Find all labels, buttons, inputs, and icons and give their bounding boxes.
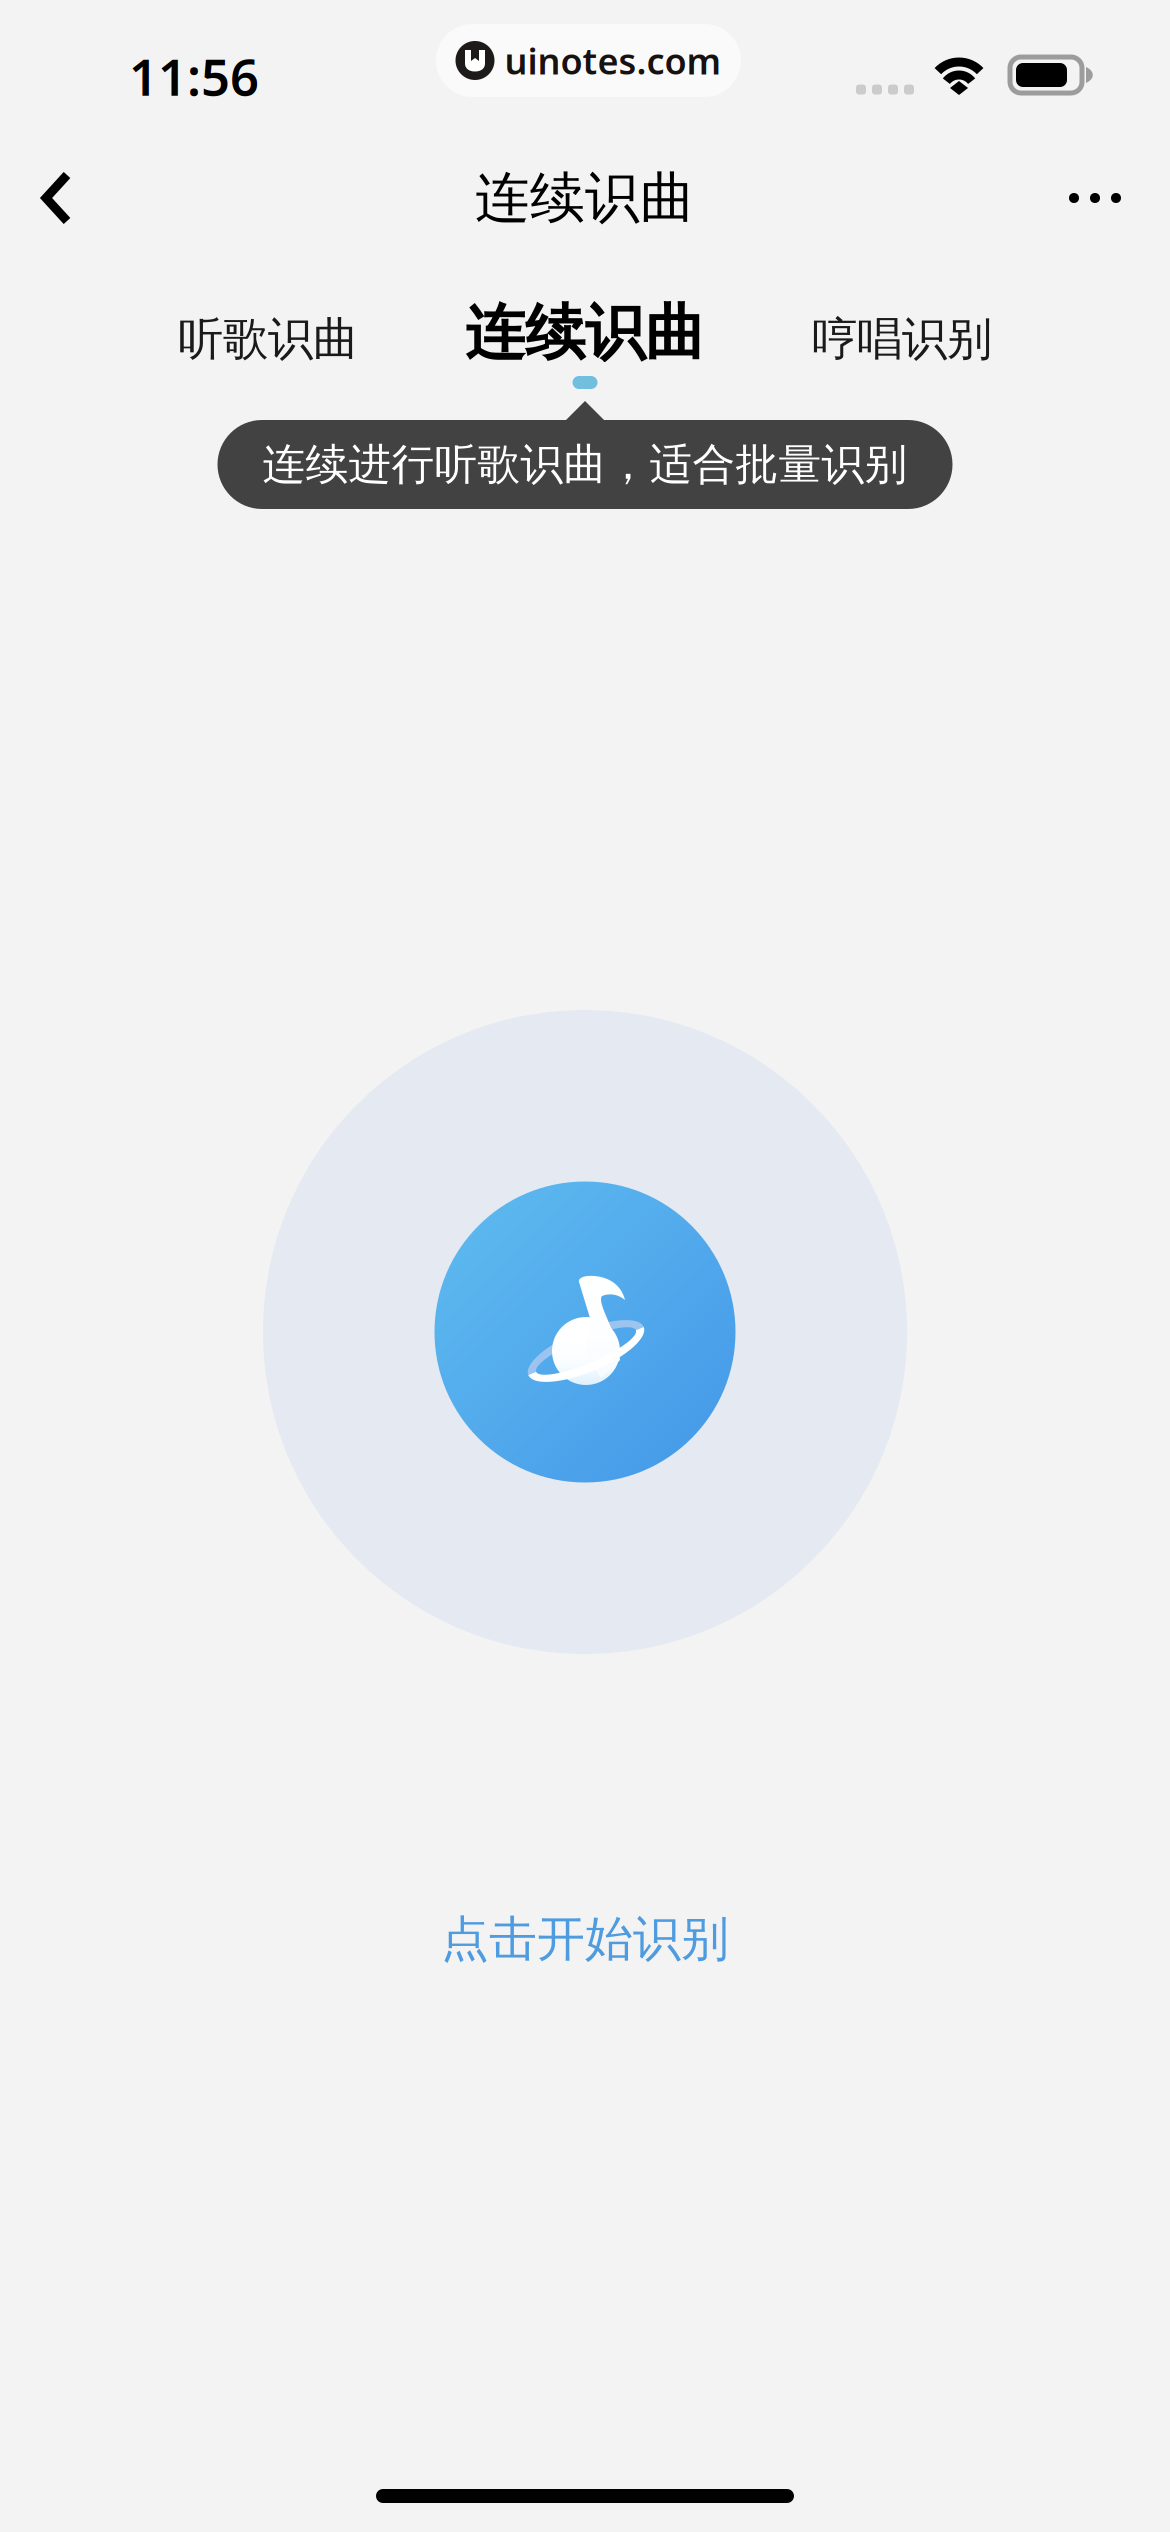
button[interactable]: 返回 [19,144,95,252]
button[interactable]: 哼唱识别 [787,301,1017,390]
staticText: uinotes.com [504,37,721,84]
staticText: 连续进行听歌识曲，适合批量识别 [262,438,907,491]
button[interactable]: 点击开始识别 [263,1010,907,1654]
staticText: 连续识曲 [475,164,695,231]
staticText: 点击开始识别 [441,1909,729,1968]
staticText: 听歌识曲 [178,311,358,367]
staticText: 哼唱识别 [812,311,992,367]
staticText: 连续识曲 [465,296,705,370]
button[interactable]: 点击开始识别 [441,1909,729,1969]
button[interactable]: 连续识曲 [460,301,710,390]
staticText: 11:56 [129,42,259,110]
button[interactable]: 更多 [1039,144,1151,252]
button[interactable]: 听歌识曲 [153,301,383,390]
